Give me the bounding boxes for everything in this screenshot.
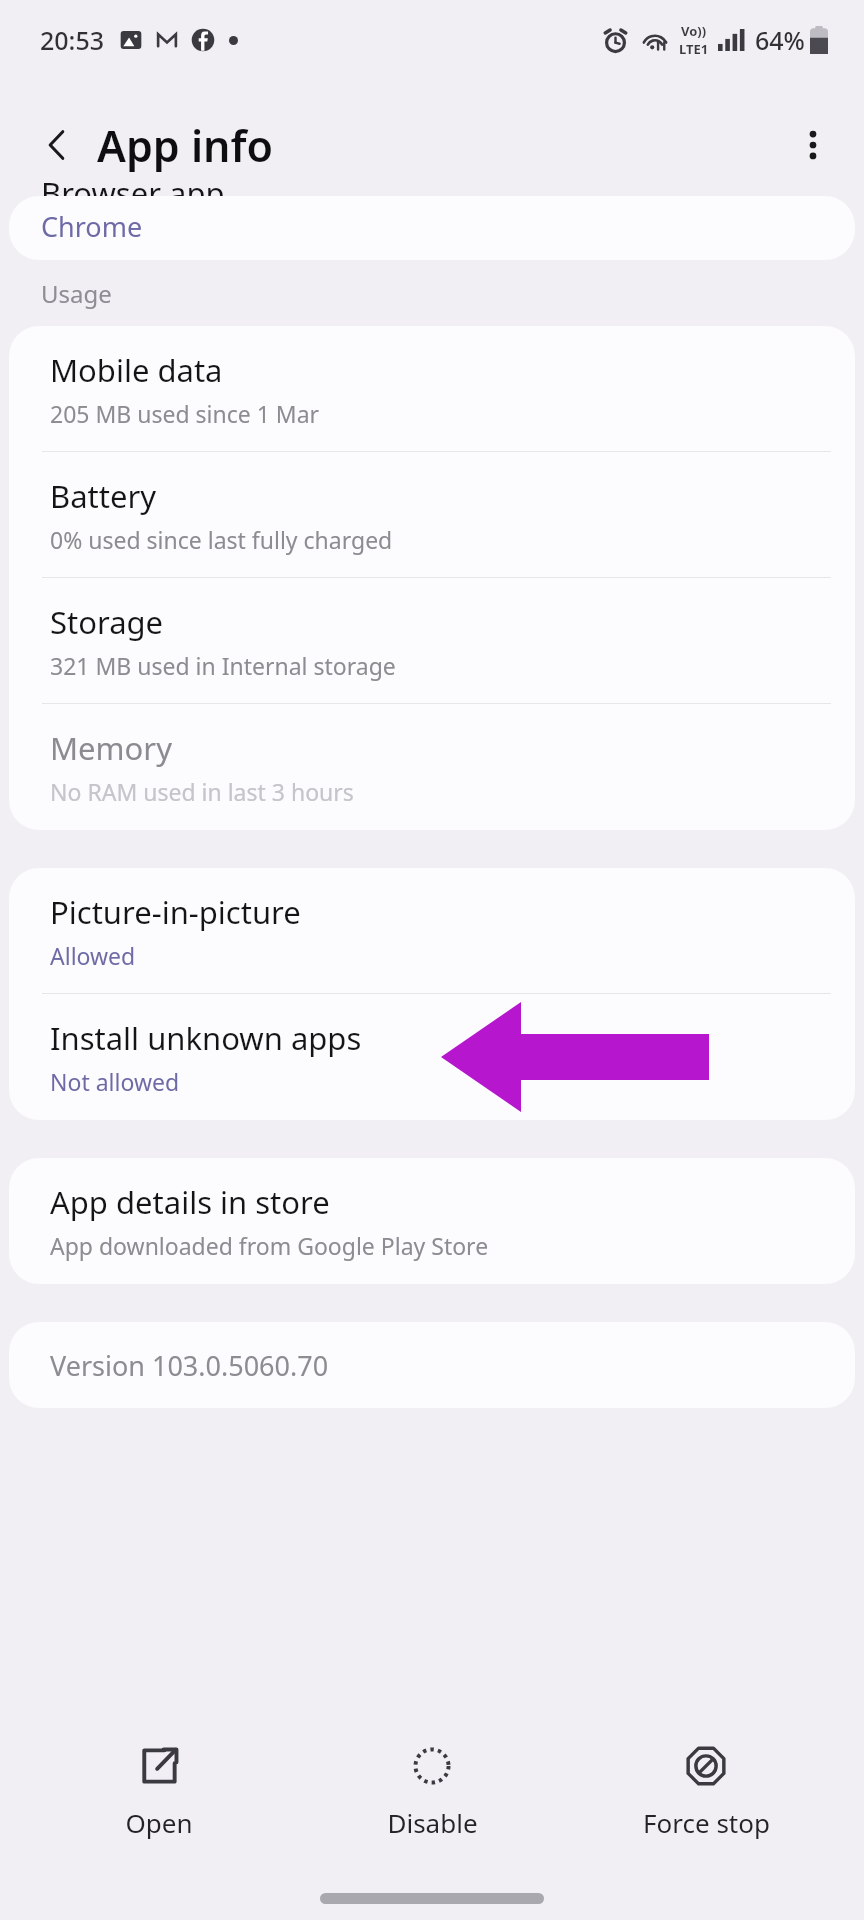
staticText: Usage (41, 277, 112, 310)
staticText: 64% (755, 23, 805, 57)
button[interactable]: Memory (9, 704, 855, 830)
staticText: Open (125, 1805, 193, 1840)
staticText: App downloaded from Google Play Store (50, 1230, 489, 1261)
staticText: App info (97, 116, 273, 175)
staticText: No RAM used in last 3 hours (50, 776, 354, 807)
staticText: Storage (50, 601, 164, 643)
button[interactable]: Open (44, 1735, 274, 1848)
staticText: LTE1 (679, 40, 709, 58)
staticText: Mobile data (50, 349, 223, 391)
button[interactable]: Battery (9, 452, 855, 578)
staticText: Not allowed (50, 1066, 180, 1097)
staticText: 0% used since last fully charged (50, 524, 393, 555)
button[interactable]: Disable (317, 1735, 547, 1848)
button[interactable]: Force stop (591, 1735, 821, 1848)
staticText: 205 MB used since 1 Mar (50, 398, 320, 429)
button[interactable]: App details in store (9, 1158, 855, 1284)
staticText: App details in store (50, 1181, 330, 1223)
button[interactable]: Install unknown apps (9, 994, 855, 1120)
staticText: 20:53 (40, 23, 105, 57)
staticText: Vo)) (681, 22, 707, 40)
staticText: Version 103.0.5060.70 (50, 1347, 329, 1384)
staticText: Force stop (643, 1805, 770, 1840)
staticText: Chrome (41, 208, 143, 245)
staticText: Allowed (50, 940, 136, 971)
staticText: Memory (50, 727, 172, 769)
staticText: Disable (387, 1805, 478, 1840)
button[interactable]: Picture-in-picture (9, 868, 855, 994)
staticText: Battery (50, 475, 157, 517)
button[interactable]: Back (28, 116, 86, 174)
staticText: 321 MB used in Internal storage (50, 650, 396, 681)
staticText: Browser app (41, 172, 225, 214)
button[interactable]: Chrome (9, 196, 855, 260)
staticText: Install unknown apps (50, 1017, 362, 1059)
button[interactable]: Storage (9, 578, 855, 704)
button[interactable]: More options (782, 114, 844, 176)
staticText: Picture-in-picture (50, 891, 301, 933)
button[interactable]: Mobile data (9, 326, 855, 452)
